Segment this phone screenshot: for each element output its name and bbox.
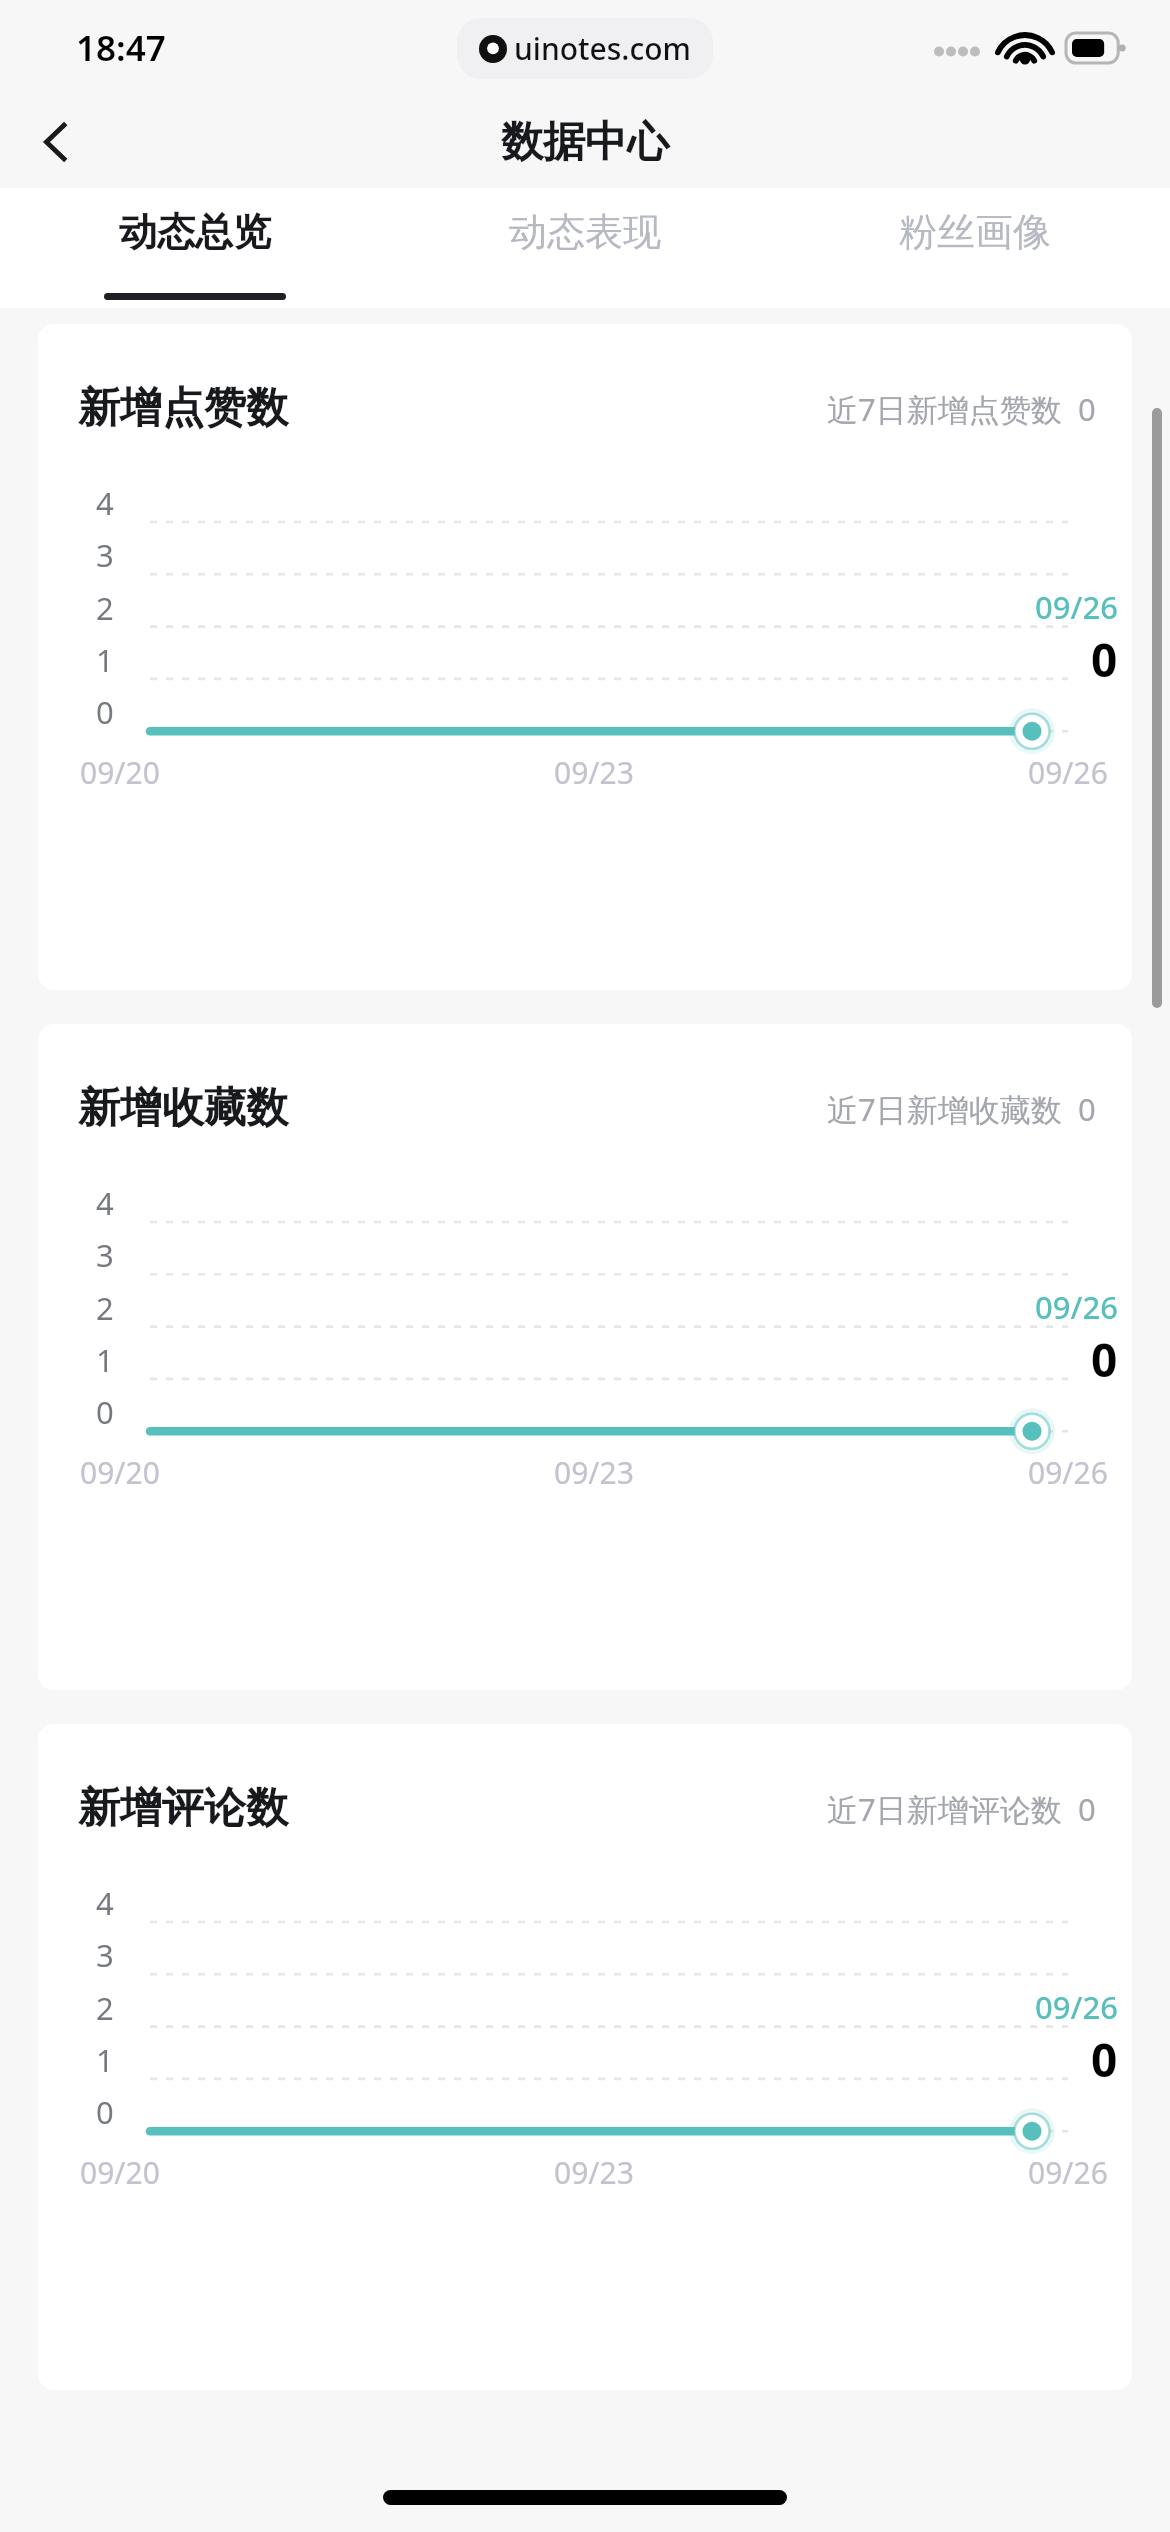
staticText: 0 [1091, 2028, 1118, 2091]
staticText: 近7日新增收藏数 [827, 1088, 1062, 1130]
staticText: 动态表现 [509, 208, 661, 256]
button[interactable]: 新增点赞数 [38, 324, 1132, 990]
staticText: 近7日新增点赞数 [827, 388, 1062, 430]
staticText: 0 [1078, 388, 1096, 430]
staticText: 0 [96, 1391, 114, 1433]
staticText: 4 [96, 1182, 114, 1224]
staticText: 新增收藏数 [78, 1082, 288, 1135]
staticText: 0 [1078, 1088, 1096, 1130]
staticText: 新增评论数 [78, 1782, 288, 1835]
staticText: 09/26 [1028, 752, 1108, 793]
staticText: 3 [96, 534, 114, 576]
button[interactable]: 动态表现 [390, 188, 780, 308]
staticText: 近7日新增评论数 [827, 1788, 1062, 1830]
staticText: 0 [96, 2091, 114, 2133]
staticText: 09/26 [1028, 2152, 1108, 2193]
button[interactable]: 动态总览 [0, 188, 390, 308]
staticText: 09/23 [554, 1452, 634, 1493]
staticText: 3 [96, 1934, 114, 1976]
staticText: 动态总览 [119, 208, 271, 256]
button[interactable]: 粉丝画像 [780, 188, 1170, 308]
staticText: 0 [1078, 1788, 1096, 1830]
staticText: 新增点赞数 [78, 382, 288, 435]
staticText: 09/26 [1035, 1986, 1118, 2028]
staticText: 09/20 [80, 1452, 160, 1493]
staticText: 18:47 [76, 24, 166, 72]
staticText: uinotes.com [514, 28, 691, 69]
staticText: 09/26 [1035, 1286, 1118, 1328]
staticText: 0 [1091, 628, 1118, 691]
staticText: 09/20 [80, 752, 160, 793]
staticText: 1 [96, 639, 114, 681]
staticText: 0 [96, 691, 114, 733]
staticText: 0 [1091, 1328, 1118, 1391]
staticText: 数据中心 [501, 116, 669, 169]
staticText: 09/23 [554, 2152, 634, 2193]
staticText: 粉丝画像 [899, 208, 1051, 256]
staticText: 09/20 [80, 2152, 160, 2193]
staticText: 09/23 [554, 752, 634, 793]
staticText: 2 [96, 1287, 114, 1329]
button[interactable]: 新增收藏数 [38, 1024, 1132, 1690]
button[interactable]: Back [18, 104, 94, 180]
staticText: 3 [96, 1234, 114, 1276]
staticText: 4 [96, 1882, 114, 1924]
staticText: 1 [96, 1339, 114, 1381]
staticText: 4 [96, 482, 114, 524]
staticText: 09/26 [1028, 1452, 1108, 1493]
staticText: 09/26 [1035, 586, 1118, 628]
staticText: 2 [96, 1987, 114, 2029]
staticText: 1 [96, 2039, 114, 2081]
button[interactable]: 新增评论数 [38, 1724, 1132, 2390]
staticText: 2 [96, 587, 114, 629]
